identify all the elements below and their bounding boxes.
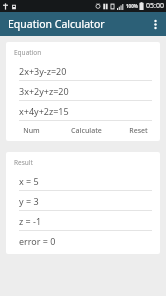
staticText: Calculate — [71, 126, 102, 136]
staticText: Num — [23, 126, 40, 136]
button[interactable]: x = 5 — [6, 171, 160, 190]
button[interactable]: More options — [144, 13, 166, 35]
button[interactable]: y = 3 — [6, 191, 160, 210]
button[interactable]: error = 0 — [6, 231, 160, 250]
staticText: x+4y+2z=15 — [19, 105, 69, 117]
button[interactable]: Reset — [116, 121, 160, 141]
staticText: Equation — [14, 48, 42, 57]
staticText: x = 5 — [19, 175, 39, 187]
staticText: 05:00 — [146, 1, 164, 11]
button[interactable]: Calculate — [57, 121, 116, 141]
staticText: 2x+3y-z=20 — [19, 65, 67, 77]
staticText: error = 0 — [19, 235, 56, 247]
button[interactable]: z = -1 — [6, 211, 160, 230]
staticText: z = -1 — [19, 215, 42, 227]
staticText: Reset — [129, 126, 148, 136]
button[interactable]: 2x+3y-z=20 — [6, 61, 160, 80]
button[interactable]: 3x+2y+z=20 — [6, 81, 160, 100]
staticText: 100% — [126, 3, 138, 9]
button[interactable]: x+4y+2z=15 — [6, 101, 160, 120]
staticText: 3x+2y+z=20 — [19, 85, 69, 97]
staticText: Equation Calculator — [8, 17, 105, 31]
button[interactable]: Num — [6, 121, 57, 141]
staticText: Result — [14, 158, 33, 167]
staticText: y = 3 — [19, 195, 39, 207]
